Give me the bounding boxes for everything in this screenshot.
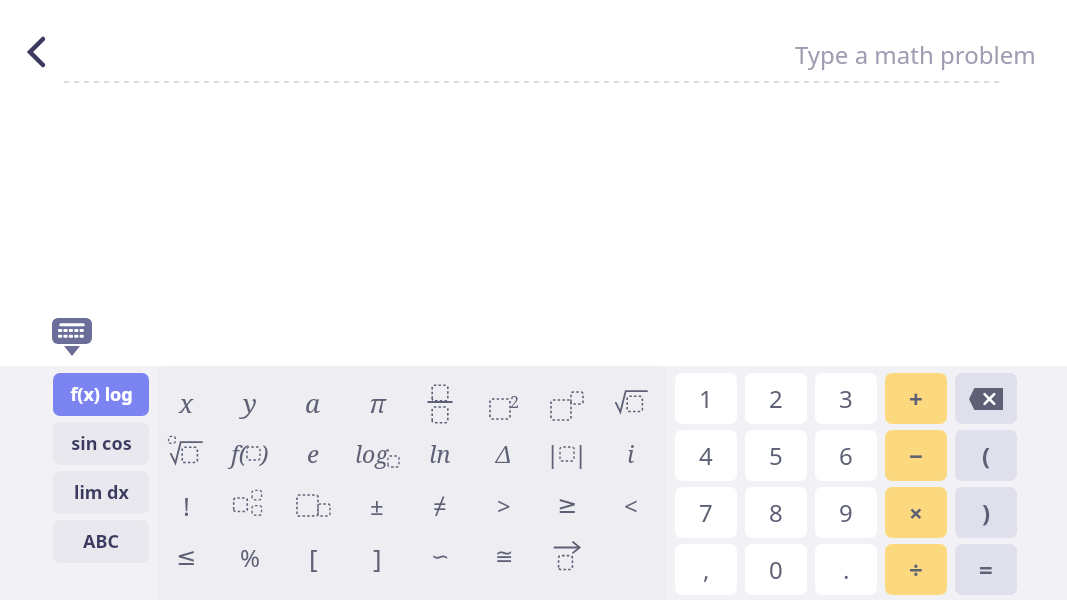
button[interactable]: 1: [675, 373, 737, 424]
button[interactable]: x: [159, 378, 213, 426]
button[interactable]: 0: [745, 544, 807, 595]
staticText: f(x) log: [70, 382, 133, 407]
staticText: ∽: [431, 544, 450, 570]
button[interactable]: π: [350, 378, 404, 426]
button[interactable]: e: [286, 429, 340, 477]
button[interactable]: 3: [815, 373, 877, 424]
button[interactable]: <: [604, 481, 658, 529]
staticText: ×: [909, 496, 923, 529]
button[interactable]: 4: [675, 430, 737, 481]
button[interactable]: Back: [12, 28, 60, 76]
button[interactable]: =: [955, 544, 1017, 595]
staticText: ): [260, 437, 269, 470]
staticText: 8: [769, 496, 783, 529]
button[interactable]: [604, 378, 658, 426]
button[interactable]: +: [885, 373, 947, 424]
staticText: 2: [510, 391, 519, 413]
staticText: −: [909, 439, 923, 472]
staticText: =: [979, 553, 993, 586]
button[interactable]: Backspace: [955, 373, 1017, 424]
staticText: x: [179, 385, 194, 420]
staticText: 0: [769, 553, 783, 586]
button[interactable]: lim dx: [53, 471, 149, 514]
button[interactable]: !: [159, 481, 213, 529]
button[interactable]: ≅: [477, 533, 531, 581]
staticText: 5: [769, 439, 783, 472]
staticText: +: [909, 382, 923, 415]
staticText: ): [982, 496, 991, 529]
button[interactable]: %: [223, 533, 277, 581]
staticText: y: [243, 385, 257, 420]
staticText: e: [307, 437, 319, 470]
button[interactable]: [: [286, 533, 340, 581]
button[interactable]: 8: [745, 487, 807, 538]
button[interactable]: Δ: [477, 429, 531, 477]
staticText: ≤: [176, 543, 197, 571]
staticText: 6: [839, 439, 853, 472]
button[interactable]: f(: [223, 429, 277, 477]
button[interactable]: a: [286, 378, 340, 426]
button[interactable]: [413, 378, 467, 426]
staticText: ≥: [557, 491, 578, 519]
button[interactable]: ≤: [159, 533, 213, 581]
button[interactable]: −: [885, 430, 947, 481]
button[interactable]: ÷: [885, 544, 947, 595]
staticText: Type a math problem: [795, 38, 1036, 71]
staticText: 3: [839, 382, 853, 415]
staticText: Δ: [496, 437, 512, 470]
button[interactable]: sin cos: [53, 422, 149, 465]
staticText: f(: [231, 437, 247, 470]
button[interactable]: 2: [745, 373, 807, 424]
button[interactable]: |: [540, 429, 594, 477]
button[interactable]: 2: [477, 378, 531, 426]
button[interactable]: [159, 429, 213, 477]
button[interactable]: [540, 533, 594, 581]
button[interactable]: >: [477, 481, 531, 529]
staticText: lim dx: [74, 480, 129, 505]
button[interactable]: [540, 378, 594, 426]
staticText: %: [240, 541, 260, 574]
button[interactable]: Switch keyboard: [52, 318, 92, 356]
staticText: <: [624, 489, 638, 522]
button[interactable]: [286, 481, 340, 529]
button[interactable]: f(x) log: [53, 373, 149, 416]
button[interactable]: 5: [745, 430, 807, 481]
staticText: ±: [370, 489, 384, 522]
button[interactable]: 7: [675, 487, 737, 538]
button[interactable]: [223, 481, 277, 529]
staticText: π: [369, 385, 386, 420]
staticText: log: [355, 438, 388, 469]
button[interactable]: ABC: [53, 520, 149, 563]
button[interactable]: ln: [413, 429, 467, 477]
staticText: >: [497, 489, 511, 522]
button[interactable]: ,: [675, 544, 737, 595]
button[interactable]: ]: [350, 533, 404, 581]
staticText: .: [843, 553, 850, 586]
staticText: i: [627, 437, 635, 470]
button[interactable]: ≠: [413, 481, 467, 529]
staticText: !: [183, 488, 190, 523]
button[interactable]: ×: [885, 487, 947, 538]
staticText: ln: [429, 437, 451, 470]
staticText: ]: [373, 540, 382, 575]
staticText: 4: [699, 439, 713, 472]
button[interactable]: ≥: [540, 481, 594, 529]
button[interactable]: log: [350, 429, 404, 477]
button[interactable]: y: [223, 378, 277, 426]
button[interactable]: .: [815, 544, 877, 595]
button[interactable]: ∽: [413, 533, 467, 581]
button[interactable]: (: [955, 430, 1017, 481]
button[interactable]: ±: [350, 481, 404, 529]
button[interactable]: i: [604, 429, 658, 477]
staticText: 2: [769, 382, 783, 415]
button[interactable]: ): [955, 487, 1017, 538]
staticText: 1: [699, 382, 713, 415]
staticText: a: [305, 385, 321, 420]
button[interactable]: 9: [815, 487, 877, 538]
staticText: |: [546, 437, 560, 470]
staticText: ÷: [909, 553, 923, 586]
staticText: 7: [699, 496, 713, 529]
button[interactable]: 6: [815, 430, 877, 481]
staticText: |: [574, 437, 588, 470]
staticText: [: [309, 540, 318, 575]
